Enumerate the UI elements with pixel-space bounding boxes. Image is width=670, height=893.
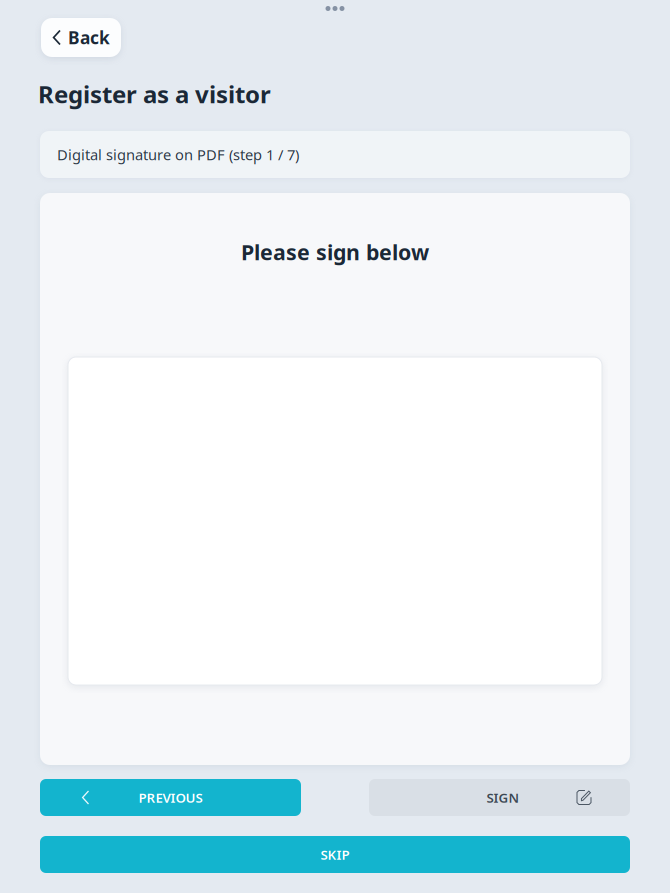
staticText: Digital signature on PDF (step 1 / 7) (57, 145, 299, 164)
button[interactable]: SKIP (40, 836, 630, 873)
button[interactable]: PREVIOUS (40, 779, 301, 816)
staticText: Back (68, 26, 110, 49)
staticText: Register as a visitor (38, 78, 271, 110)
staticText: Please sign below (241, 238, 429, 266)
staticText: SKIP (320, 846, 349, 863)
button[interactable]: Back (41, 18, 121, 57)
button[interactable]: SIGN (369, 779, 630, 816)
staticText: SIGN (486, 789, 519, 806)
staticText: PREVIOUS (138, 789, 202, 806)
